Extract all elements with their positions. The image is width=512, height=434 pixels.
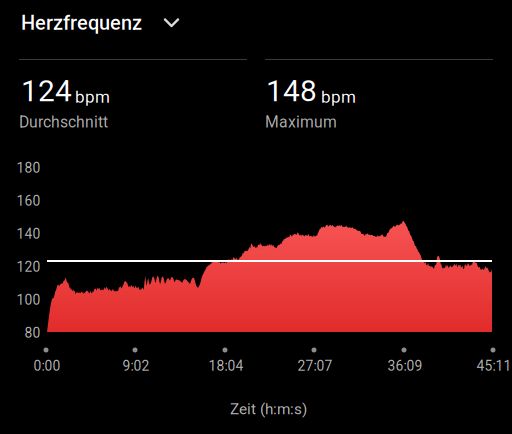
staticText: 80 [24,325,40,341]
staticText: Zeit (h:m:s) [230,400,307,418]
staticText: 27:07 [297,358,332,374]
staticText: 140 [16,226,40,242]
staticText: 160 [16,193,40,209]
staticText: 45:11 [476,358,511,374]
staticText: Maximum [265,113,337,131]
button[interactable]: Herzfrequenz, Metrik wechseln [0,0,512,434]
staticText: bpm [75,87,110,107]
staticText: 100 [16,292,40,308]
staticText: 180 [16,160,40,176]
staticText: Herzfrequenz [21,11,142,35]
staticText: 36:09 [387,358,422,374]
staticText: 124 [21,73,72,108]
staticText: 9:02 [122,358,149,374]
staticText: 148 [266,73,317,108]
staticText: 0:00 [33,358,60,374]
staticText: bpm [321,87,356,107]
staticText: Durchschnitt [19,113,108,131]
staticText: 120 [16,259,40,275]
staticText: 18:04 [208,358,243,374]
